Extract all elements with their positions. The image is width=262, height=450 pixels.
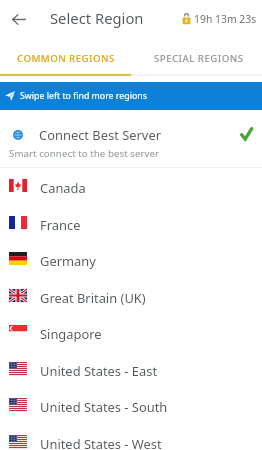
staticText: Canada — [40, 179, 86, 197]
staticText: Smart connect to the best server — [9, 147, 160, 160]
button[interactable]: Germany — [0, 240, 262, 277]
button[interactable]: France — [0, 204, 262, 241]
staticText: Germany — [40, 252, 96, 270]
button[interactable]: Swipe left to find more regions — [0, 82, 262, 110]
staticText: Singapore — [40, 325, 102, 343]
staticText: 19h 13m 23s — [194, 12, 257, 26]
button[interactable]: United States - South — [0, 386, 262, 423]
staticText: United States - West — [40, 435, 162, 450]
button[interactable]: COMMON REGIONS — [0, 37, 131, 74]
staticText: Great Britain (UK) — [40, 289, 146, 307]
button[interactable]: United States - East — [0, 350, 262, 387]
button[interactable]: Canada — [0, 167, 262, 204]
staticText: SPECIAL REGIONS — [154, 52, 244, 65]
button[interactable]: United States - West — [0, 423, 262, 450]
staticText: COMMON REGIONS — [17, 52, 115, 65]
staticText: United States - South — [40, 398, 168, 416]
other: Selected — [240, 127, 253, 141]
button[interactable]: Singapore — [0, 313, 262, 350]
staticText: United States - East — [40, 362, 158, 380]
button[interactable]: Back — [4, 4, 34, 34]
staticText: France — [40, 216, 81, 234]
staticText: Select Region — [50, 8, 144, 28]
button[interactable]: Connect Best Server — [0, 110, 262, 167]
button[interactable]: SPECIAL REGIONS — [131, 37, 262, 74]
staticText: Connect Best Server — [39, 126, 161, 144]
staticText: Swipe left to find more regions — [20, 90, 147, 102]
button[interactable]: Great Britain (UK) — [0, 277, 262, 314]
